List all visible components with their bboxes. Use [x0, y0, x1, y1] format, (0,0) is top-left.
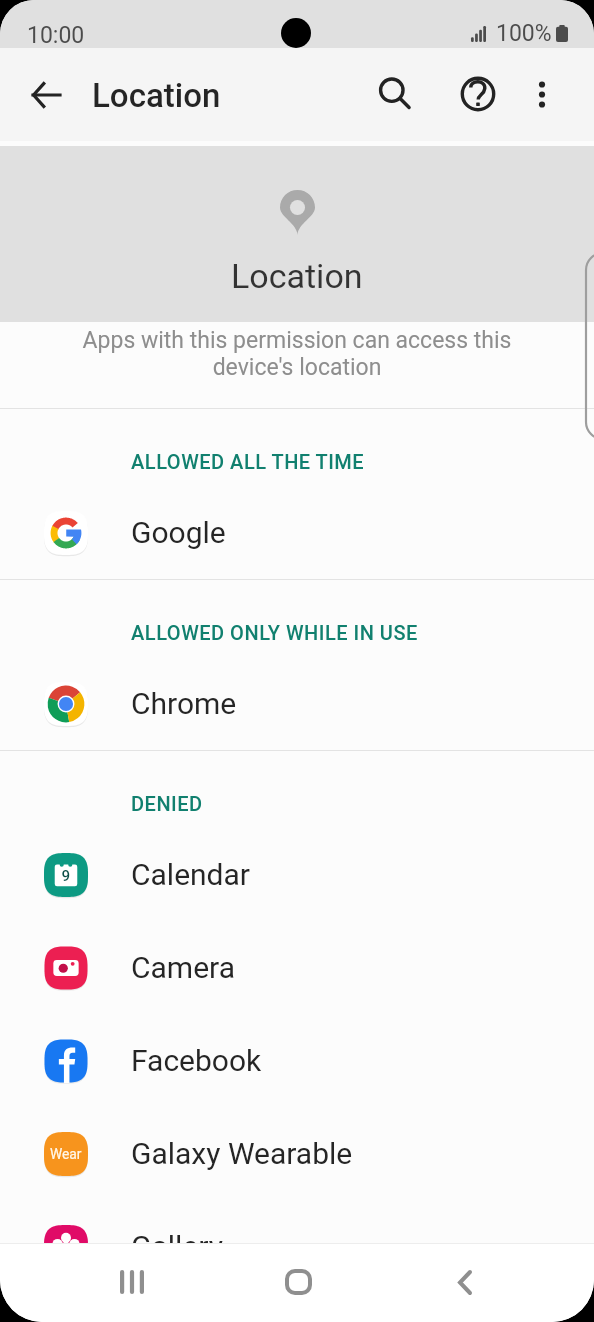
- button[interactable]: Calendar: [0, 828, 594, 921]
- button[interactable]: Help: [450, 66, 506, 122]
- staticText: ALLOWED ALL THE TIME: [131, 450, 365, 473]
- staticText: Camera: [131, 950, 235, 985]
- staticText: Facebook: [131, 1043, 262, 1078]
- button[interactable]: Chrome: [0, 657, 594, 750]
- staticText: DENIED: [131, 792, 203, 815]
- staticText: Apps with this permission can access thi…: [67, 327, 527, 380]
- button[interactable]: Camera: [0, 921, 594, 1014]
- button[interactable]: Gallery: [0, 1200, 594, 1293]
- staticText: 10:00: [27, 22, 85, 49]
- button[interactable]: Search: [367, 66, 423, 122]
- button[interactable]: Back: [437, 1254, 493, 1310]
- staticText: Location: [92, 76, 221, 115]
- staticText: Gallery: [131, 1229, 223, 1264]
- staticText: Galaxy Wearable: [131, 1136, 353, 1171]
- staticText: Location: [231, 256, 363, 296]
- staticText: ALLOWED ONLY WHILE IN USE: [131, 621, 418, 644]
- button[interactable]: Galaxy Wearable: [0, 1107, 594, 1200]
- staticText: 100%: [496, 20, 552, 47]
- button[interactable]: Facebook: [0, 1014, 594, 1107]
- staticText: Chrome: [131, 686, 237, 721]
- button[interactable]: Recent apps: [104, 1254, 160, 1310]
- staticText: Google: [131, 515, 226, 550]
- staticText: Calendar: [131, 857, 251, 892]
- button[interactable]: Navigate up: [18, 67, 74, 123]
- button[interactable]: Google: [0, 486, 594, 579]
- button[interactable]: More options: [514, 66, 570, 122]
- button[interactable]: Home: [270, 1254, 326, 1310]
